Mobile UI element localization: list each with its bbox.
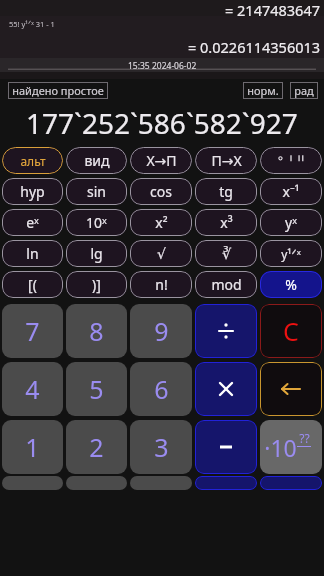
staticText: = 0.0226114356013 xyxy=(188,37,321,57)
button[interactable]: tg xyxy=(195,178,257,205)
staticText: 1 xyxy=(25,430,40,464)
button[interactable]: альт xyxy=(2,147,63,174)
staticText: = 2147483647 xyxy=(225,0,321,16)
button[interactable]: ∛ xyxy=(195,240,257,267)
button[interactable]: sin xyxy=(66,178,127,205)
button[interactable]: x² xyxy=(130,209,192,236)
staticText: 55! y¹ᐟˣ 31 - 1 xyxy=(9,19,55,29)
staticText: альт xyxy=(20,153,46,169)
button[interactable] xyxy=(260,147,322,174)
button[interactable]: 8 xyxy=(66,304,127,358)
button[interactable]: √ xyxy=(130,240,192,267)
button[interactable]: 10ˣ xyxy=(66,209,127,236)
staticText: 2 xyxy=(89,430,104,464)
button[interactable]: eˣ xyxy=(2,209,63,236)
staticText: 9 xyxy=(154,314,169,348)
button[interactable]: Multiply xyxy=(195,362,257,416)
staticText: 7 xyxy=(25,314,40,348)
button[interactable]: 3 xyxy=(130,420,192,474)
button[interactable]: digit xyxy=(66,476,127,490)
staticText: норм. xyxy=(247,83,279,98)
button[interactable]: Backspace xyxy=(260,362,322,416)
button[interactable]: Times ten to the power xyxy=(260,420,322,474)
staticText: ∛ xyxy=(222,246,231,262)
button[interactable]: )] xyxy=(66,271,127,298)
button[interactable]: y¹ᐟˣ xyxy=(260,240,322,267)
button[interactable]: Subtract xyxy=(195,420,257,474)
staticText: yˣ xyxy=(285,213,297,232)
button[interactable]: найдено простое xyxy=(8,82,108,99)
button[interactable]: 1 xyxy=(2,420,63,474)
staticText: Х→П xyxy=(146,151,177,170)
button[interactable]: 9 xyxy=(130,304,192,358)
button[interactable]: mod xyxy=(195,271,257,298)
button[interactable]: hyp xyxy=(2,178,63,205)
staticText: 10ˣ xyxy=(86,213,107,232)
button[interactable]: ln xyxy=(2,240,63,267)
staticText: 3 xyxy=(154,430,169,464)
button[interactable]: П→Х xyxy=(195,147,257,174)
staticText: tg xyxy=(219,182,233,201)
staticText: cos xyxy=(150,182,172,201)
staticText: mod xyxy=(211,275,242,294)
button[interactable]: n! xyxy=(130,271,192,298)
staticText: [( xyxy=(28,275,37,294)
staticText: ·10 xyxy=(264,432,297,463)
button[interactable]: C xyxy=(260,304,322,358)
button[interactable]: 6 xyxy=(130,362,192,416)
button[interactable]: x³ xyxy=(195,209,257,236)
staticText: hyp xyxy=(20,182,45,201)
button[interactable]: yˣ xyxy=(260,209,322,236)
staticText: 5 xyxy=(89,372,104,406)
button[interactable]: equals xyxy=(260,476,322,490)
button[interactable]: 7 xyxy=(2,304,63,358)
button[interactable]: lg xyxy=(66,240,127,267)
staticText: )] xyxy=(92,275,101,294)
staticText: C xyxy=(283,314,299,348)
staticText: 6 xyxy=(154,372,169,406)
button[interactable]: рад xyxy=(290,82,318,99)
staticText: y¹ᐟˣ xyxy=(281,246,301,262)
staticText: ?? xyxy=(299,430,310,446)
staticText: eˣ xyxy=(26,213,39,232)
staticText: найдено простое xyxy=(12,83,104,98)
staticText: 8 xyxy=(89,314,104,348)
button[interactable]: cos xyxy=(130,178,192,205)
button[interactable]: 2 xyxy=(66,420,127,474)
staticText: 4 xyxy=(25,372,40,406)
button[interactable]: Х→П xyxy=(130,147,192,174)
button[interactable]: x⁻¹ xyxy=(260,178,322,205)
button[interactable]: digit xyxy=(130,476,192,490)
staticText: П→Х xyxy=(211,151,242,170)
button[interactable]: % xyxy=(260,271,322,298)
staticText: x² xyxy=(155,213,168,232)
button[interactable]: [( xyxy=(2,271,63,298)
staticText: √ xyxy=(157,246,166,262)
staticText: вид xyxy=(84,151,110,170)
button[interactable]: 4 xyxy=(2,362,63,416)
staticText: x³ xyxy=(220,213,233,232)
staticText: 177`252`586`582`927 xyxy=(26,104,298,142)
staticText: % xyxy=(285,275,297,294)
button[interactable]: вид xyxy=(66,147,127,174)
button[interactable]: норм. xyxy=(243,82,283,99)
button[interactable]: Divide xyxy=(195,304,257,358)
staticText: ln xyxy=(26,244,39,263)
button[interactable]: 5 xyxy=(66,362,127,416)
staticText: рад xyxy=(294,83,314,98)
staticText: sin xyxy=(87,182,106,201)
button[interactable]: digit xyxy=(2,476,63,490)
staticText: x⁻¹ xyxy=(282,182,300,201)
staticText: 15:35 2024-06-02 xyxy=(128,60,197,72)
staticText: n! xyxy=(155,275,168,294)
button[interactable]: plus xyxy=(195,476,257,490)
staticText: lg xyxy=(90,244,103,263)
